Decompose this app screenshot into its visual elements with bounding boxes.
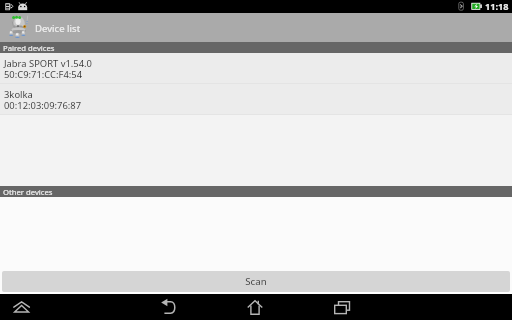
button[interactable]: Home [231,294,279,320]
staticText: Device list [35,22,81,35]
button[interactable]: Device list [0,13,88,42]
staticText: 11:18 [485,0,509,13]
staticText: Scan [245,275,267,288]
button[interactable]: Scan [2,271,510,292]
button[interactable]: Recent apps [318,294,366,320]
staticText: Jabra SPORT v1.54.0 [4,57,92,70]
staticText: 3kolka [4,88,33,101]
button[interactable]: 3kolka [0,84,512,115]
button[interactable]: Back [145,294,193,320]
button[interactable]: Expand navigation bar [0,294,46,320]
staticText: 50:C9:71:CC:F4:54 [4,68,83,81]
button[interactable]: Jabra SPORT v1.54.0 [0,53,512,84]
staticText: Other devices [3,187,53,197]
staticText: 00:12:03:09:76:87 [4,99,82,112]
staticText: Paired devices [3,43,55,53]
